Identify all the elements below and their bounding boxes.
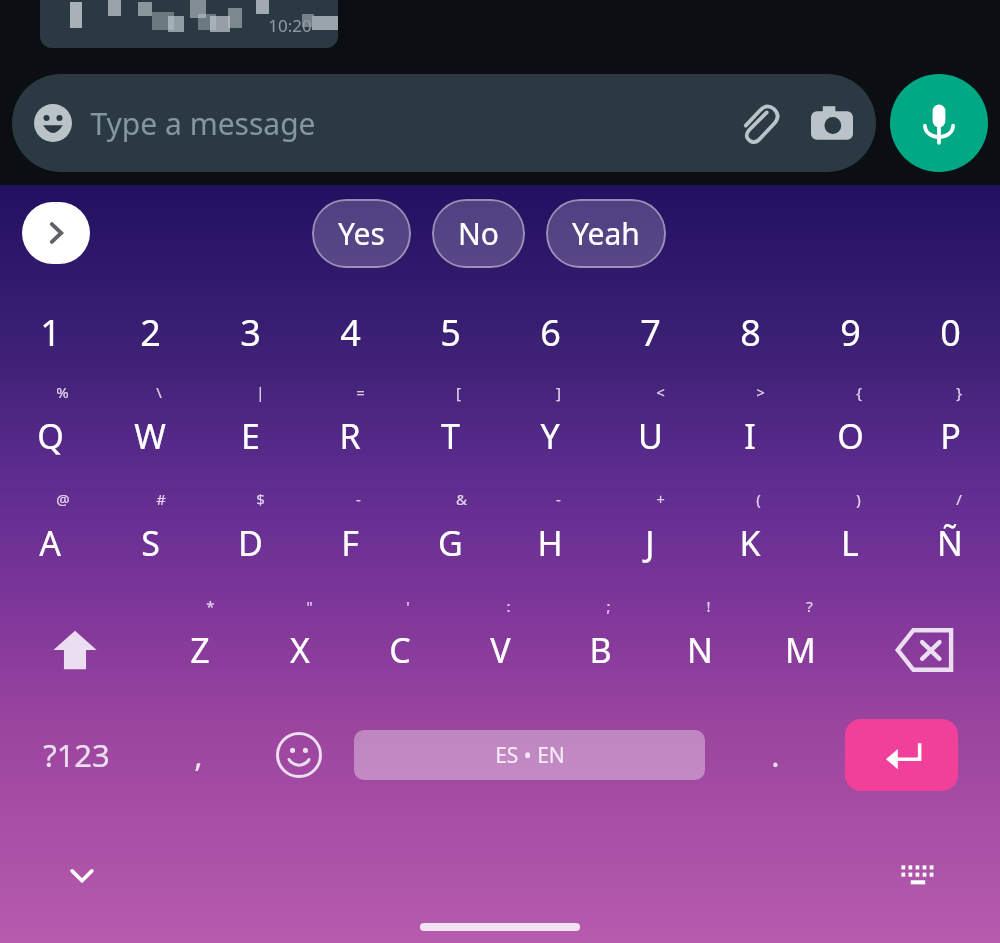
button[interactable]: W <box>100 382 200 489</box>
button[interactable]: 5 <box>400 282 500 382</box>
button[interactable]: Switch keyboard <box>878 843 958 907</box>
button[interactable]: 2 <box>100 282 200 382</box>
button[interactable]: Z <box>150 596 250 703</box>
button[interactable]: Emoji keyboard <box>244 703 354 806</box>
staticText: Ñ <box>937 520 963 566</box>
button[interactable]: C <box>350 596 450 703</box>
staticText: / <box>956 489 962 509</box>
button[interactable]: Emoji <box>12 74 876 172</box>
button[interactable]: J <box>600 489 700 596</box>
staticText: ?123 <box>43 734 110 776</box>
staticText: # <box>156 489 166 509</box>
button[interactable]: Backspace <box>850 596 1000 703</box>
staticText: F <box>341 520 359 566</box>
staticText: 7 <box>640 308 661 357</box>
button[interactable]: Q <box>0 382 100 489</box>
button[interactable]: 8 <box>700 282 800 382</box>
staticText: ] <box>556 382 561 402</box>
staticText: [ <box>456 382 461 402</box>
button[interactable]: Yeah <box>546 199 666 268</box>
button[interactable]: Emoji <box>30 100 76 146</box>
staticText: 4 <box>340 308 361 357</box>
staticText: * <box>206 596 215 616</box>
staticText: X <box>290 627 310 673</box>
button[interactable]: D <box>200 489 300 596</box>
button[interactable]: B <box>550 596 650 703</box>
button[interactable]: Y <box>500 382 600 489</box>
button[interactable]: Ñ <box>900 489 1000 596</box>
button[interactable]: X <box>250 596 350 703</box>
staticText: S <box>141 520 160 566</box>
button[interactable]: G <box>400 489 500 596</box>
staticText: 10:20 <box>268 14 312 37</box>
button[interactable]: Attach <box>732 97 784 149</box>
button[interactable]: 0 <box>900 282 1000 382</box>
button[interactable]: More suggestions <box>22 202 90 264</box>
button[interactable]: Camera <box>806 97 858 149</box>
staticText: : <box>506 596 511 616</box>
button[interactable]: N <box>650 596 750 703</box>
staticText: . <box>771 734 780 776</box>
staticText: G <box>438 520 463 566</box>
staticText: H <box>537 520 563 566</box>
button[interactable]: Hide keyboard <box>42 843 122 907</box>
button[interactable]: 6 <box>500 282 600 382</box>
button[interactable]: T <box>400 382 500 489</box>
staticText: Y <box>540 413 560 459</box>
staticText: 6 <box>540 308 561 357</box>
button[interactable]: U <box>600 382 700 489</box>
staticText: O <box>837 413 864 459</box>
staticText: M <box>785 627 816 673</box>
staticText: 2 <box>140 308 161 357</box>
staticText: \ <box>156 382 162 402</box>
staticText: ) <box>856 489 861 509</box>
staticText: No <box>458 213 499 254</box>
button[interactable]: I <box>700 382 800 489</box>
button[interactable]: 4 <box>300 282 400 382</box>
button[interactable]: ES • EN <box>354 730 705 780</box>
button[interactable]: Shift <box>0 596 150 703</box>
button[interactable]: 9 <box>800 282 900 382</box>
staticText: ' <box>406 596 410 616</box>
button[interactable]: O <box>800 382 900 489</box>
button[interactable]: V <box>450 596 550 703</box>
staticText: T <box>441 413 460 459</box>
staticText: W <box>134 413 166 459</box>
staticText: { <box>856 382 862 402</box>
staticText: U <box>638 413 663 459</box>
button[interactable]: M <box>750 596 850 703</box>
button[interactable]: S <box>100 489 200 596</box>
staticText: Z <box>190 627 210 673</box>
staticText: - <box>556 489 561 509</box>
button[interactable]: E <box>200 382 300 489</box>
button[interactable]: 7 <box>600 282 700 382</box>
button[interactable]: , <box>152 703 244 806</box>
staticText: ( <box>756 489 761 509</box>
button[interactable]: R <box>300 382 400 489</box>
button[interactable]: 1 <box>0 282 100 382</box>
staticText: > <box>756 382 765 402</box>
button[interactable]: 3 <box>200 282 300 382</box>
button[interactable]: H <box>500 489 600 596</box>
button[interactable]: K <box>700 489 800 596</box>
staticText: K <box>739 520 761 566</box>
button[interactable]: P <box>900 382 1000 489</box>
button[interactable]: . <box>705 703 845 806</box>
staticText: 8 <box>740 308 761 357</box>
button[interactable]: A <box>0 489 100 596</box>
staticText: I <box>744 413 756 459</box>
button[interactable]: ?123 <box>0 703 152 806</box>
button[interactable]: Voice message <box>890 74 988 172</box>
staticText: V <box>490 627 511 673</box>
staticText: , <box>194 734 203 776</box>
staticText: % <box>56 382 69 402</box>
staticText: } <box>956 382 962 402</box>
button[interactable]: Enter <box>845 719 958 791</box>
button[interactable]: Yes <box>312 199 411 268</box>
button[interactable]: No <box>432 199 525 268</box>
staticText: 5 <box>440 308 461 357</box>
staticText: ES • EN <box>495 741 565 770</box>
button[interactable]: L <box>800 489 900 596</box>
staticText: - <box>356 489 361 509</box>
button[interactable]: F <box>300 489 400 596</box>
